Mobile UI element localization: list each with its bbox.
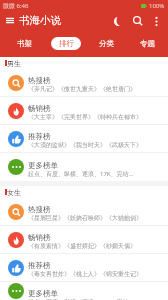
button[interactable]: 推荐榜 (0, 254, 168, 281)
staticText: 畅销榜 (28, 104, 51, 113)
button[interactable]: 更多榜单 (0, 282, 168, 300)
button[interactable]: 畅销榜 (0, 226, 168, 253)
button[interactable]: Menu (2, 13, 17, 28)
staticText: 畅销榜 (28, 233, 51, 242)
button[interactable]: 专题 (127, 30, 168, 57)
button[interactable]: 排行 (45, 30, 86, 57)
button[interactable]: 更多榜单 (0, 153, 168, 181)
staticText: 男生 (7, 59, 21, 68)
staticText: 书海小说 (19, 14, 61, 27)
staticText: 书架 (17, 39, 32, 48)
staticText: 《大主宰》《完美世界》《特种兵在都市》 (28, 113, 142, 121)
staticText: 《有质素情》《盛世娇妃》《纱媚天偶》 (28, 242, 136, 250)
staticText: 女生 (7, 188, 21, 197)
staticText: 《星屑巨星》《妖娆召唤师》《大猫她俏》 (28, 214, 142, 222)
staticText: 起点、百度、纵横、逐浪、17K、完结... (28, 298, 134, 300)
staticText: 起点、百度、纵横、逐浪、17K、完结... (28, 170, 134, 178)
button[interactable]: More options (148, 13, 164, 29)
button[interactable]: 畅销榜 (0, 97, 168, 124)
button[interactable]: 推荐榜 (0, 125, 168, 152)
staticText: 排行 (59, 39, 74, 48)
staticText: 推荐榜 (28, 261, 51, 270)
staticText: 热搜榜 (28, 205, 51, 214)
staticText: 热搜榜 (28, 76, 51, 85)
staticText: 《毒女再世炸》《桃上人》《锦安重生记》 (28, 270, 142, 278)
staticText: 分类 (99, 39, 114, 48)
staticText: 微微 6:46 (3, 2, 29, 10)
staticText: 推荐榜 (28, 132, 51, 141)
staticText: 专题 (140, 39, 155, 48)
button[interactable]: 分类 (86, 30, 127, 57)
button[interactable]: 热搜榜 (0, 198, 168, 225)
staticText: 《弃凡记》《傲世九重天》《绝世唐门》 (28, 85, 136, 93)
button[interactable]: Night mode (109, 12, 127, 30)
staticText: 100% (149, 2, 165, 10)
button[interactable]: Search (129, 12, 147, 30)
button[interactable]: 热搜榜 (0, 69, 168, 96)
staticText: 《大漠的监狱》《我当时天》《武极天下》 (28, 141, 142, 149)
staticText: 更多榜单 (28, 289, 58, 298)
staticText: 更多榜单 (28, 161, 58, 170)
button[interactable]: 书架 (3, 30, 45, 57)
